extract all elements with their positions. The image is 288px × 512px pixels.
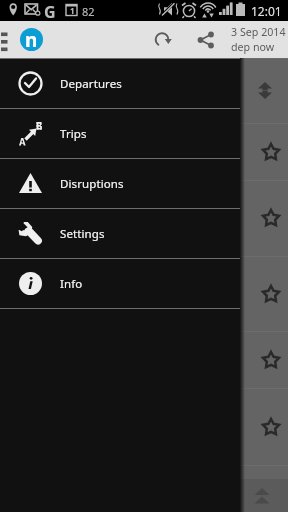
staticText: n — [25, 28, 38, 50]
button[interactable] — [0, 180, 288, 256]
button[interactable]: Refresh — [146, 23, 180, 57]
button[interactable] — [0, 388, 288, 465]
staticText: Disruptions — [60, 176, 124, 192]
button[interactable]: Trips — [0, 109, 240, 158]
button[interactable] — [0, 256, 288, 331]
button[interactable]: 3 Sep 2014 — [231, 25, 286, 55]
button[interactable]: Info — [0, 259, 240, 308]
button[interactable] — [0, 123, 288, 180]
button[interactable]: Departures — [0, 59, 240, 108]
staticText: Info — [60, 276, 83, 292]
staticText: 1 — [70, 5, 75, 16]
staticText: Departures — [60, 76, 122, 92]
staticText: G — [44, 1, 56, 22]
button[interactable]: Disruptions — [0, 159, 240, 208]
button[interactable]: App logo, open navigation — [20, 28, 43, 51]
button[interactable] — [0, 58, 288, 123]
button[interactable]: Share — [189, 23, 223, 57]
button[interactable]: Expand — [0, 479, 288, 512]
staticText: 12:01 — [251, 3, 282, 19]
button[interactable] — [0, 331, 288, 388]
staticText: dep now — [231, 40, 275, 55]
staticText: Trips — [60, 126, 87, 142]
staticText: 82 — [82, 4, 95, 19]
button[interactable]: Settings — [0, 209, 240, 258]
staticText: 3 Sep 2014 — [231, 25, 286, 40]
staticText: Settings — [60, 226, 105, 242]
